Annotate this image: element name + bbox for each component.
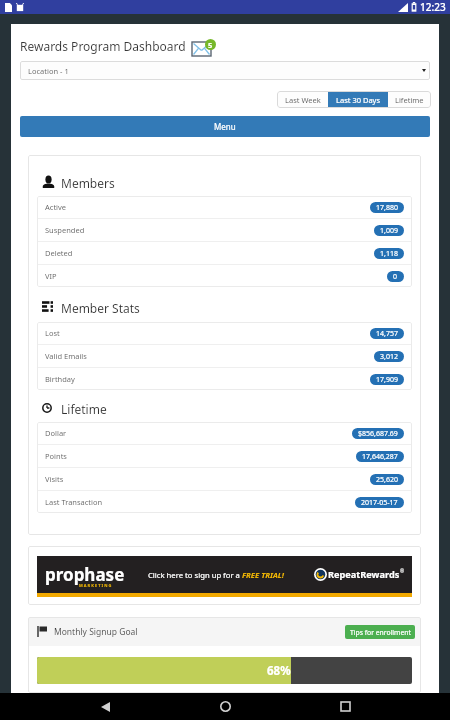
staticText: 17,880 [376,203,398,213]
staticText: 2017-05-17 [361,498,398,508]
staticText: Menu [214,121,236,132]
staticText: Deleted [45,248,73,258]
button[interactable]: Birthday [37,368,412,390]
staticText: ® [400,568,405,575]
button[interactable]: Visits [37,468,412,490]
button[interactable]: Deleted [37,242,412,264]
staticText: 5 [208,40,213,50]
button[interactable]: Valid Emails [37,345,412,367]
staticText: Tips for enrollment [350,628,411,637]
staticText: Visits [45,474,64,484]
staticText: Valid Emails [45,351,87,361]
staticText: Birthday [45,374,75,384]
staticText: Lifetime [395,95,424,105]
staticText: Click here to sign up for a [148,570,242,580]
staticText: Points [45,451,67,461]
button[interactable]: Lost [37,322,412,344]
button[interactable]: Dollar [37,422,412,444]
staticText: Active [45,202,67,212]
staticText: prophase [45,563,125,586]
button[interactable]: Home [210,693,240,720]
staticText: Last Week [285,95,321,105]
staticText: 25,620 [376,475,398,485]
button[interactable]: Recents [330,693,360,720]
staticText: 12:23 [420,0,446,14]
staticText: 68% [267,663,291,679]
staticText: 3,012 [380,352,398,362]
staticText: Suspended [45,225,85,235]
button[interactable]: prophase [37,556,412,597]
button[interactable]: VIP [37,265,412,287]
staticText: Last Transaction [45,497,103,507]
staticText: Lost [45,328,60,338]
button[interactable]: Points [37,445,412,467]
staticText: 1,009 [380,226,398,236]
staticText: Last 30 Days [336,95,381,105]
staticText: M A R K E T I N G [79,583,112,588]
staticText: 14,757 [376,329,398,339]
staticText: 1,118 [380,249,398,259]
staticText: 17,646,287 [362,452,398,462]
button[interactable]: Last 30 Days [328,91,388,108]
staticText: RepeatRewards [328,568,400,581]
button[interactable]: Lifetime [388,91,431,108]
staticText: 17,909 [376,375,398,385]
button[interactable]: Active [37,196,412,218]
staticText: $856,687.69 [358,429,398,439]
button[interactable]: Last Transaction [37,491,412,513]
staticText: Member Stats [61,300,140,313]
staticText: Monthly Signup Goal [54,626,138,638]
button[interactable]: Back [90,693,120,720]
staticText: 0 [393,272,398,282]
button[interactable]: Last Week [277,91,328,108]
button[interactable]: Location - 1 [20,61,430,80]
staticText: Members [61,175,115,188]
staticText: Dollar [45,428,67,438]
staticText: VIP [45,271,57,281]
staticText: Rewards Program Dashboard [20,38,186,54]
staticText: FREE TRIAL! [242,570,285,580]
staticText: Location - 1 [28,66,69,76]
button[interactable]: Tips for enrollment [345,625,415,639]
button[interactable]: Menu [20,116,430,137]
staticText: Lifetime [61,401,107,414]
button[interactable]: Suspended [37,219,412,241]
